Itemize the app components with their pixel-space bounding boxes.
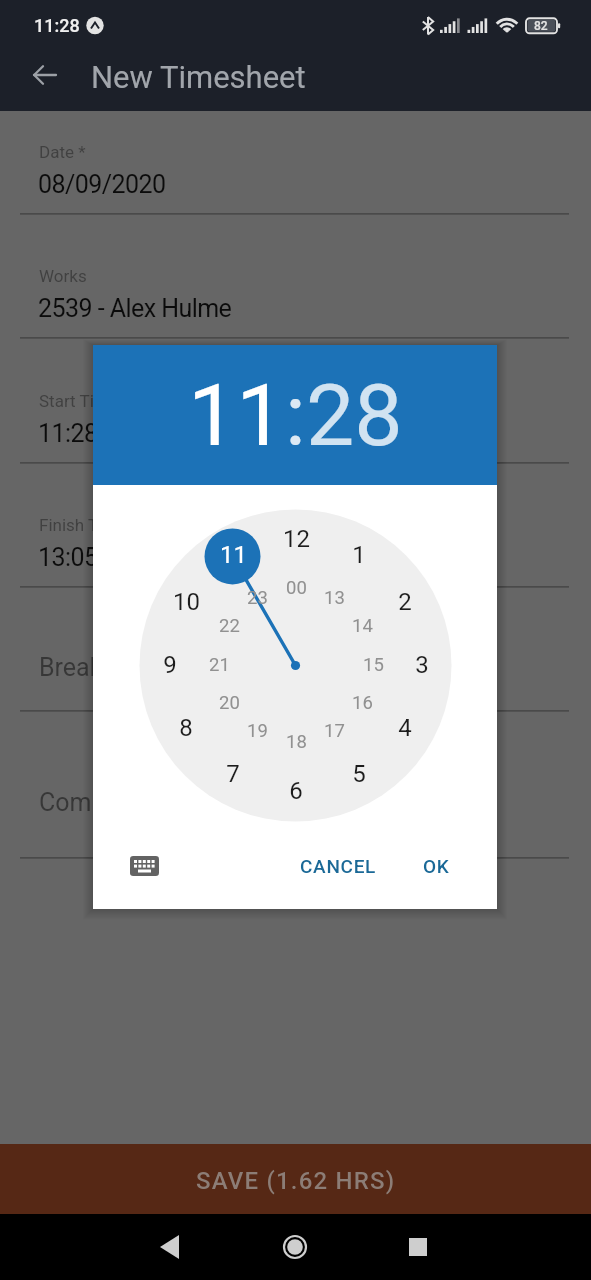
button[interactable]: 15 xyxy=(343,645,403,685)
staticText: OK xyxy=(423,855,450,877)
staticText: SAVE (1.62 HRS) xyxy=(196,1167,396,1195)
button[interactable]: 10 xyxy=(156,582,216,622)
button[interactable]: 5 xyxy=(329,754,389,794)
staticText: 3 xyxy=(415,651,429,679)
staticText: 18 xyxy=(286,731,307,753)
staticText: 21 xyxy=(209,654,230,676)
button[interactable]: OK xyxy=(411,845,462,887)
staticText: 22 xyxy=(219,615,240,637)
staticText: 13 xyxy=(324,587,345,609)
staticText: 10 xyxy=(173,588,200,616)
staticText: 11:28 xyxy=(38,419,98,448)
staticText: 4 xyxy=(398,714,412,742)
button[interactable]: 20 xyxy=(199,683,259,723)
staticText: 16 xyxy=(352,692,373,714)
button[interactable]: 19 xyxy=(227,711,287,751)
staticText: Finish Time * xyxy=(39,515,138,535)
button[interactable]: 13 xyxy=(304,578,364,618)
button[interactable]: 6 xyxy=(266,771,326,811)
button[interactable]: 11 xyxy=(188,365,285,466)
staticText: 19 xyxy=(247,720,268,742)
button[interactable]: Start Time * xyxy=(0,337,591,462)
staticText: 9 xyxy=(163,651,177,679)
button[interactable]: Finish Time * xyxy=(0,462,591,586)
button[interactable]: 00 xyxy=(266,568,326,608)
staticText: 13:05 xyxy=(38,543,98,572)
staticText: 23 xyxy=(247,587,268,609)
staticText: 1 xyxy=(352,541,366,569)
staticText: 17 xyxy=(324,720,345,742)
staticText: 2 xyxy=(398,588,412,616)
button[interactable]: Switch to keyboard input xyxy=(127,854,161,878)
staticText: Date * xyxy=(39,142,86,162)
staticText: 00 xyxy=(286,577,307,599)
button[interactable]: 4 xyxy=(375,708,435,748)
button[interactable]: 28 xyxy=(306,365,403,466)
button[interactable]: 21 xyxy=(189,645,249,685)
button[interactable]: 7 xyxy=(203,754,263,794)
staticText: 8 xyxy=(179,714,193,742)
button[interactable]: 16 xyxy=(332,683,392,723)
button[interactable]: Comments xyxy=(0,710,591,857)
staticText: Works xyxy=(39,266,87,286)
button[interactable]: Recents xyxy=(385,1214,451,1280)
staticText: 08/09/2020 xyxy=(38,170,166,199)
button[interactable]: Back xyxy=(137,1214,203,1280)
staticText: 11 xyxy=(220,541,247,569)
staticText: 2539 - Alex Hulme xyxy=(38,294,232,323)
staticText: 15 xyxy=(363,654,384,676)
button[interactable]: 3 xyxy=(392,645,452,685)
button[interactable]: Works xyxy=(0,213,591,337)
staticText: Start Time * xyxy=(39,391,130,411)
staticText: 14 xyxy=(352,615,373,637)
button[interactable]: 17 xyxy=(304,711,364,751)
button[interactable]: 12 xyxy=(266,519,326,559)
staticText: 20 xyxy=(219,692,240,714)
button[interactable]: SAVE (1.62 HRS) xyxy=(0,1144,591,1214)
staticText: New Timesheet xyxy=(91,59,306,95)
staticText: CANCEL xyxy=(300,855,377,877)
staticText: : xyxy=(285,365,306,466)
staticText: 12 xyxy=(283,525,310,553)
button[interactable]: 18 xyxy=(266,722,326,762)
staticText: 5 xyxy=(352,760,366,788)
button[interactable]: 14 xyxy=(332,606,392,646)
button[interactable]: Break (Mins) xyxy=(0,586,591,710)
button[interactable]: Date * xyxy=(0,108,591,213)
staticText: Break (Mins) xyxy=(39,653,181,682)
button[interactable]: CANCEL xyxy=(288,845,389,887)
staticText: 82 xyxy=(534,19,548,33)
button[interactable]: 2 xyxy=(375,582,435,622)
button[interactable]: 1 xyxy=(329,535,389,575)
button[interactable]: 11 xyxy=(203,535,263,575)
button[interactable]: 8 xyxy=(156,708,216,748)
button[interactable]: 23 xyxy=(227,578,287,618)
button[interactable]: 9 xyxy=(140,645,200,685)
button[interactable]: Back xyxy=(25,55,65,95)
staticText: 7 xyxy=(226,760,240,788)
button[interactable]: 22 xyxy=(199,606,259,646)
button[interactable]: Home xyxy=(262,1214,328,1280)
staticText: 11:28 xyxy=(34,15,80,36)
staticText: Comments xyxy=(39,788,162,817)
staticText: 6 xyxy=(289,777,303,805)
